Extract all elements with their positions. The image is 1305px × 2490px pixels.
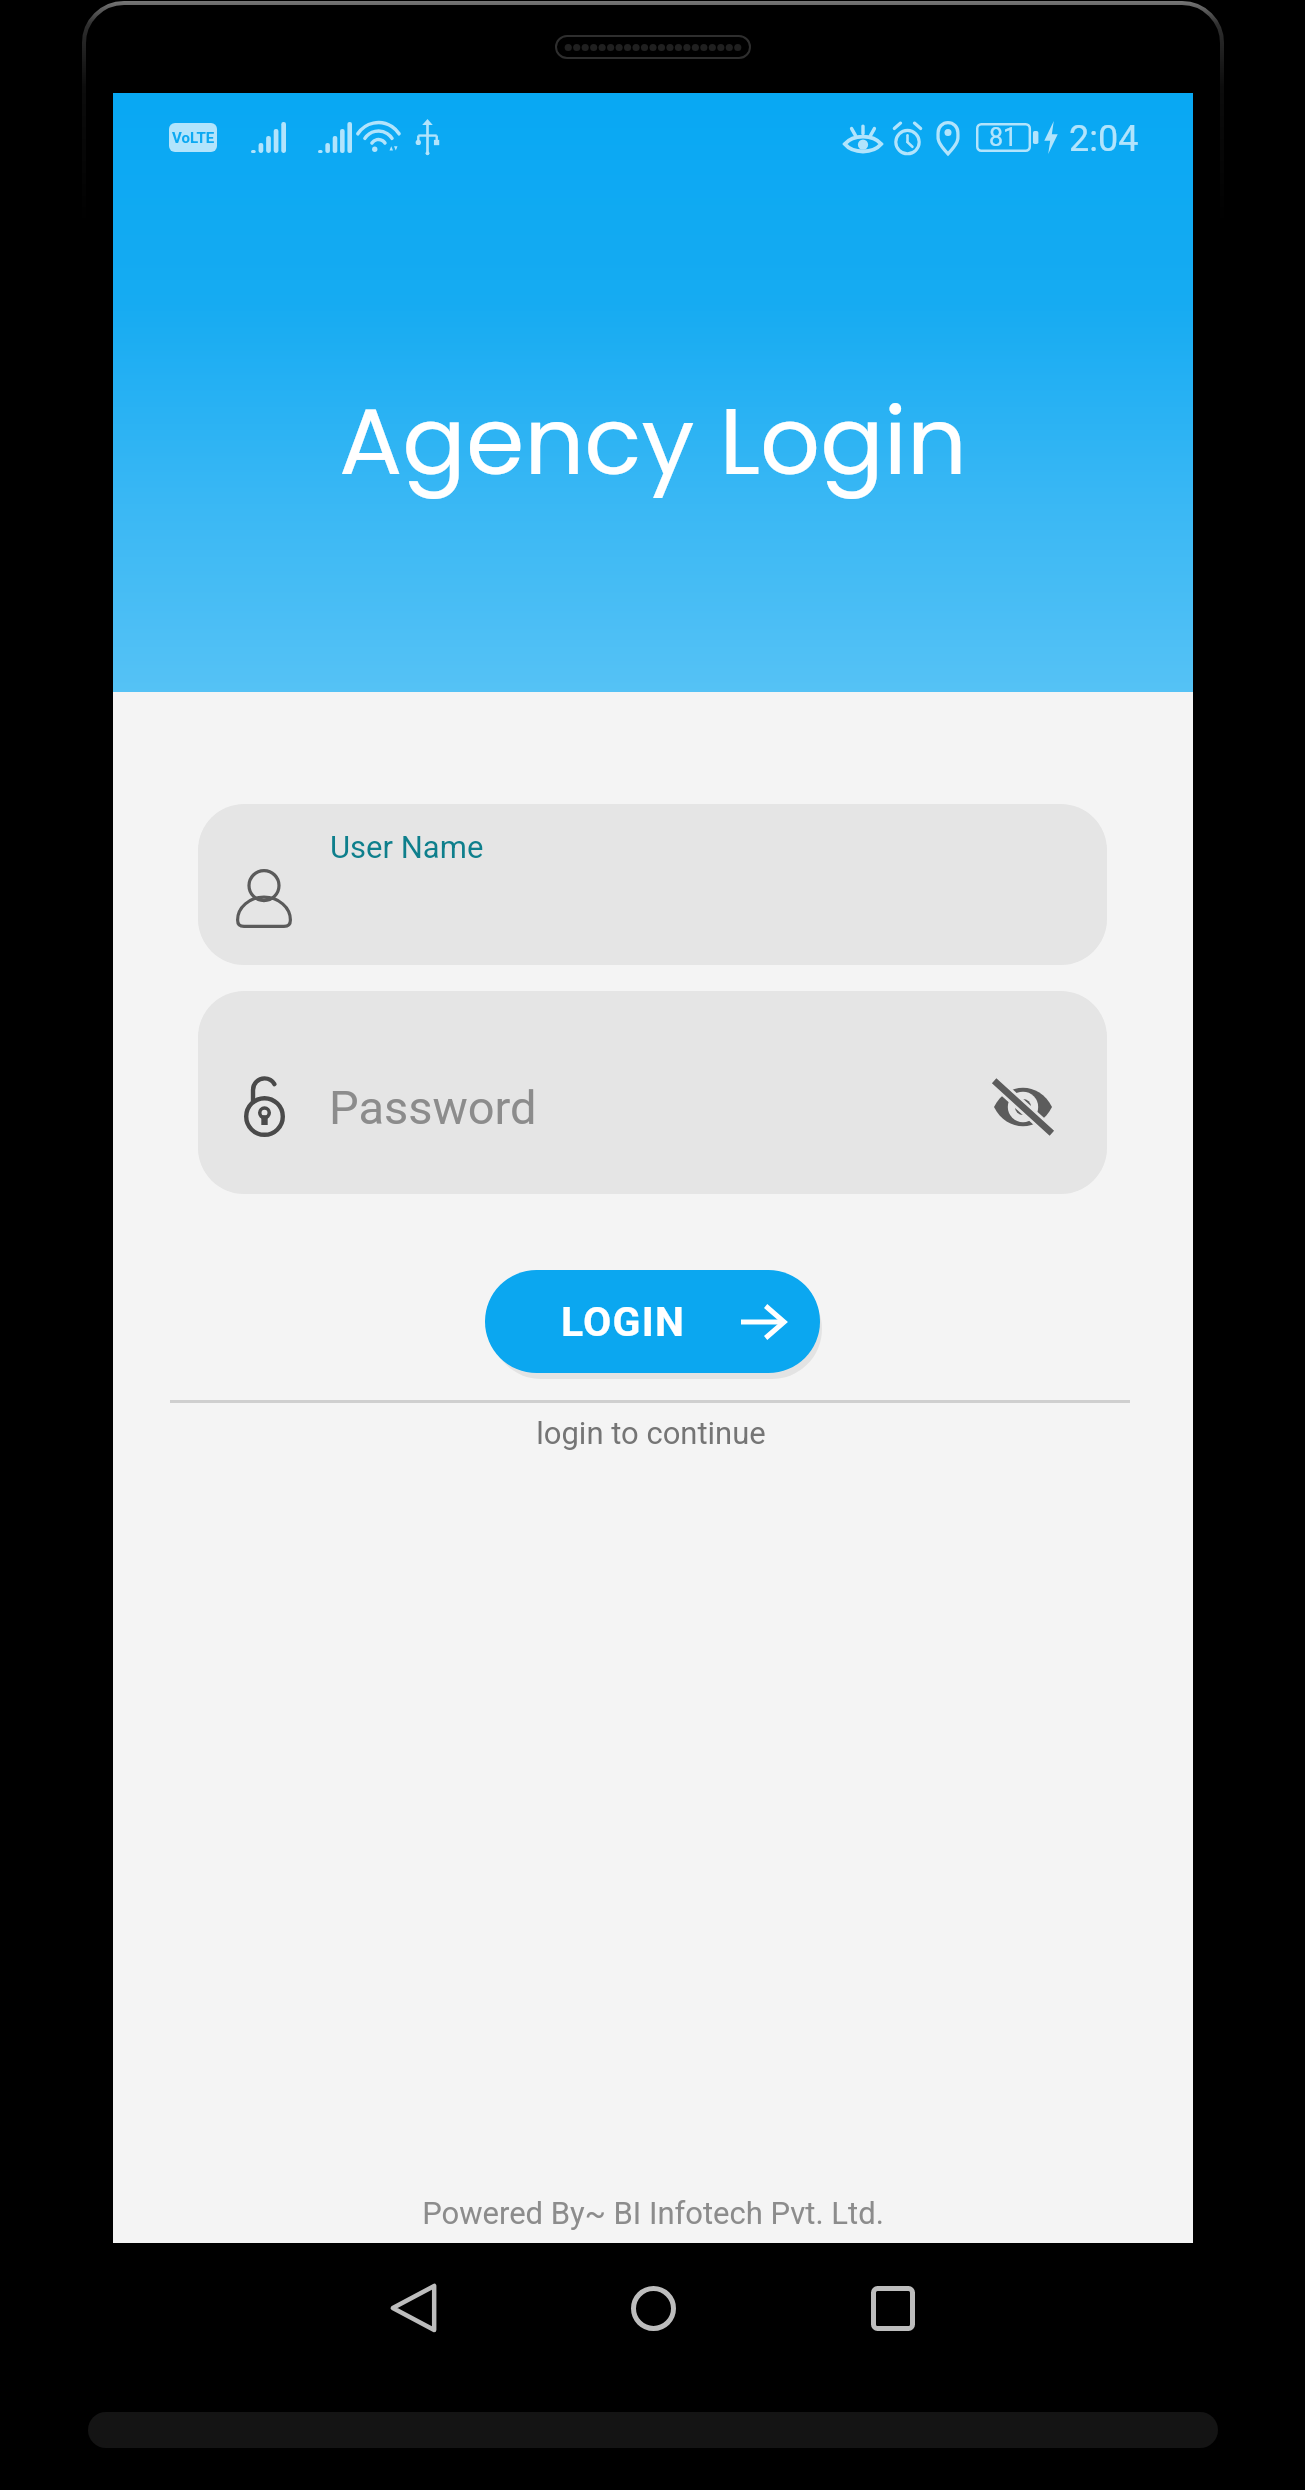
button[interactable]: User Name: [198, 804, 1107, 965]
staticText: 2:04: [1069, 118, 1139, 160]
button[interactable]: Recents: [813, 2248, 973, 2368]
button[interactable]: LOGIN: [485, 1270, 820, 1373]
staticText: Password: [329, 1080, 537, 1135]
staticText: User Name: [330, 829, 484, 865]
staticText: 81: [989, 123, 1018, 152]
button[interactable]: Back: [333, 2248, 493, 2368]
button[interactable]: Show password: [955, 1057, 1091, 1157]
button[interactable]: Home: [573, 2248, 733, 2368]
button[interactable]: Password: [198, 991, 1107, 1194]
staticText: Powered By~ BI Infotech Pvt. Ltd.: [113, 2195, 1193, 2231]
staticText: login to continue: [111, 1415, 1191, 1451]
staticText: Agency Login: [113, 375, 1193, 507]
staticText: VoLTE: [172, 129, 215, 147]
staticText: LOGIN: [561, 1298, 686, 1346]
